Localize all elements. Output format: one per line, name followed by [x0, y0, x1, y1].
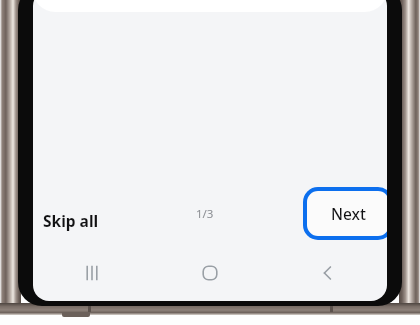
- staticText: Skip all: [43, 210, 99, 231]
- button[interactable]: Skip all: [35, 202, 107, 239]
- button[interactable]: Home: [151, 256, 269, 290]
- button[interactable]: Next: [303, 187, 387, 240]
- staticText: 1/3: [196, 206, 214, 222]
- button[interactable]: Back: [269, 256, 387, 290]
- button[interactable]: Recents: [33, 256, 151, 290]
- staticText: Next: [331, 203, 366, 224]
